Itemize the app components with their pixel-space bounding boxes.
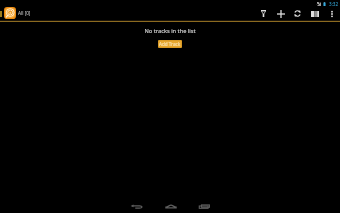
button[interactable]: Filter <box>255 4 272 23</box>
button[interactable]: Back <box>126 200 148 213</box>
button[interactable]: Add Track <box>158 40 182 48</box>
button[interactable]: App icon, navigate up <box>4 6 35 20</box>
button[interactable]: Home <box>160 200 182 213</box>
staticText: No tracks in the list <box>144 27 196 35</box>
button[interactable]: More options <box>323 4 340 23</box>
other: App icon, navigate up <box>4 7 16 19</box>
button[interactable]: Refresh <box>289 4 306 23</box>
button[interactable]: Add <box>272 4 289 23</box>
staticText: Add Track <box>159 41 181 47</box>
staticText: All [0] <box>18 10 31 16</box>
staticText: 3:32 <box>329 1 339 7</box>
button[interactable]: Recents <box>194 200 216 213</box>
button[interactable]: Layout <box>306 4 323 23</box>
